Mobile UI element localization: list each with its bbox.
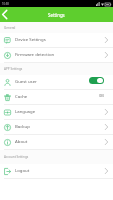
- staticText: About: [15, 138, 28, 144]
- staticText: Backup: [15, 123, 30, 129]
- button[interactable]: Backup: [0, 120, 113, 135]
- button[interactable]: Guest user toggle: [89, 77, 104, 84]
- button[interactable]: Cache: [0, 90, 113, 105]
- staticText: Language: [15, 108, 36, 114]
- button[interactable]: About: [0, 135, 113, 150]
- staticText: Guest user: [15, 78, 37, 84]
- staticText: Device Settings: [15, 36, 46, 42]
- staticText: Account Settings: [4, 155, 29, 159]
- button[interactable]: Guest user: [0, 75, 113, 90]
- staticText: APP Settings: [4, 67, 23, 71]
- staticText: Logout: [15, 167, 30, 173]
- button[interactable]: Firmware detection: [0, 48, 113, 63]
- staticText: Firmware detection: [15, 51, 55, 57]
- staticText: 0B: [99, 93, 104, 98]
- button[interactable]: Back: [0, 7, 13, 22]
- button[interactable]: Logout: [0, 164, 113, 179]
- staticText: 10:58: [2, 2, 9, 6]
- staticText: Settings: [48, 12, 65, 18]
- staticText: General: [4, 26, 16, 30]
- button[interactable]: Device Settings: [0, 33, 113, 48]
- staticText: Cache: [15, 93, 28, 99]
- button[interactable]: Language: [0, 105, 113, 120]
